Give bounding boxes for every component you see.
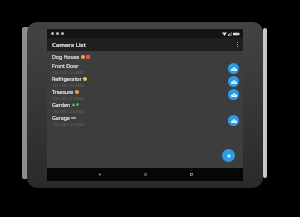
staticText: Garden: [52, 101, 71, 108]
button[interactable]: Upload to cloud: [228, 89, 239, 100]
button[interactable]: Home: [140, 169, 151, 180]
button[interactable]: Garage: [47, 114, 243, 127]
staticText: Refrigerator: [52, 75, 82, 82]
button[interactable]: Refrigerator: [47, 75, 243, 88]
staticText: Camera List: [52, 41, 86, 49]
button[interactable]: Recents: [186, 169, 197, 180]
button[interactable]: Dog House: [47, 51, 243, 62]
button[interactable]: Upload to cloud: [228, 63, 239, 74]
button[interactable]: Back: [94, 169, 105, 180]
button[interactable]: Front Door: [47, 62, 243, 75]
button[interactable]: More options: [231, 38, 243, 51]
button[interactable]: Add camera: [222, 149, 235, 162]
staticText: 192.168.1.25:8080: [52, 122, 85, 127]
staticText: 192.168.1.22:8080: [52, 83, 85, 88]
staticText: 192.168.1.23:8080: [52, 96, 85, 101]
staticText: 192.168.1.21:8080: [52, 70, 85, 75]
staticText: Dog House: [52, 53, 80, 60]
staticText: Front Door: [52, 62, 79, 69]
button[interactable]: Treasure: [47, 88, 243, 101]
button[interactable]: Upload to cloud: [228, 115, 239, 126]
button[interactable]: Upload to cloud: [228, 76, 239, 87]
staticText: Garage: [52, 114, 70, 121]
button[interactable]: Garden: [47, 101, 243, 114]
staticText: 192.168.1.24:8080: [52, 109, 85, 114]
staticText: Treasure: [52, 88, 74, 95]
